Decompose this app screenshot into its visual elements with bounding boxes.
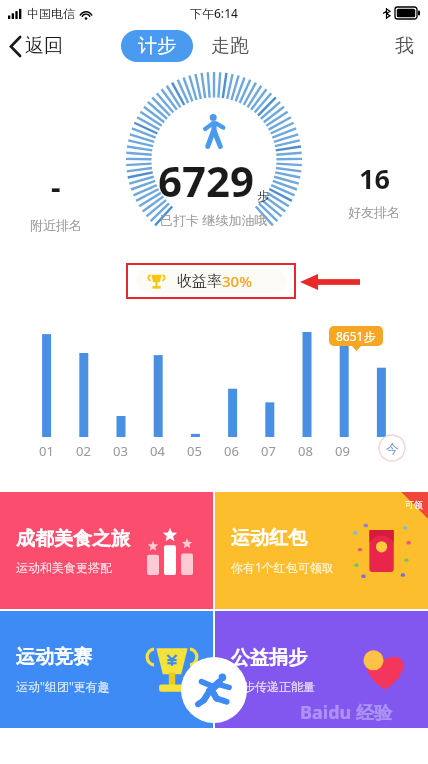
staticText: 返回 — [25, 34, 63, 58]
staticText: 02 — [76, 442, 91, 460]
staticText: 好友排名 — [348, 204, 400, 220]
staticText: jingyan.baidu.com — [300, 725, 378, 737]
staticText: 附近排名 — [30, 217, 82, 233]
button[interactable]: 收益率 — [136, 269, 286, 293]
button[interactable]: 运动竞赛 — [0, 611, 213, 728]
staticText: 中国电信 — [27, 6, 75, 21]
staticText: Baidu 经验 — [300, 700, 392, 725]
staticText: 运动红包 — [231, 526, 307, 550]
staticText: 运动"组团"更有趣 — [16, 678, 110, 694]
staticText: 09 — [335, 442, 350, 460]
staticText: 走跑 — [211, 34, 249, 58]
staticText: 你有1个红包可领取 — [231, 559, 334, 575]
staticText: 可领 — [405, 499, 423, 510]
staticText: 运动竞赛 — [16, 645, 92, 669]
staticText: 计步 — [138, 34, 176, 58]
staticText: 07 — [261, 442, 276, 460]
staticText: 16 — [359, 160, 390, 197]
staticText: 04 — [150, 442, 165, 460]
staticText: 已打卡 继续加油哦 — [160, 211, 268, 229]
staticText: 30% — [222, 271, 252, 291]
staticText: 步 — [257, 188, 270, 204]
button[interactable]: 运动红包 — [215, 492, 428, 609]
button[interactable]: 今 — [378, 434, 406, 462]
staticText: 03 — [113, 442, 128, 460]
staticText: 6729 — [158, 152, 255, 209]
staticText: 05 — [187, 442, 202, 460]
button[interactable]: 走跑 — [207, 30, 253, 62]
button[interactable]: 开始跑步 — [181, 657, 247, 723]
button[interactable]: 计步 — [121, 30, 193, 62]
button[interactable]: 我 — [381, 30, 428, 62]
staticText: 成都美食之旅 — [16, 527, 130, 551]
staticText: 今 — [386, 440, 399, 456]
button[interactable]: 成都美食之旅 — [0, 492, 213, 609]
staticText: - — [51, 166, 61, 207]
staticText: 我 — [395, 34, 414, 58]
staticText: 捐步传递正能量 — [231, 679, 315, 694]
staticText: 8651步 — [336, 328, 376, 344]
staticText: 公益捐步 — [231, 646, 307, 670]
button[interactable]: 返回 — [0, 30, 71, 62]
staticText: 06 — [224, 442, 239, 460]
staticText: 收益率 — [177, 272, 222, 291]
button[interactable]: 公益捐步 — [215, 611, 428, 728]
staticText: 运动和美食更搭配 — [16, 560, 112, 575]
staticText: 01 — [39, 442, 54, 460]
staticText: 下午6:14 — [190, 5, 238, 21]
staticText: 08 — [298, 442, 313, 460]
